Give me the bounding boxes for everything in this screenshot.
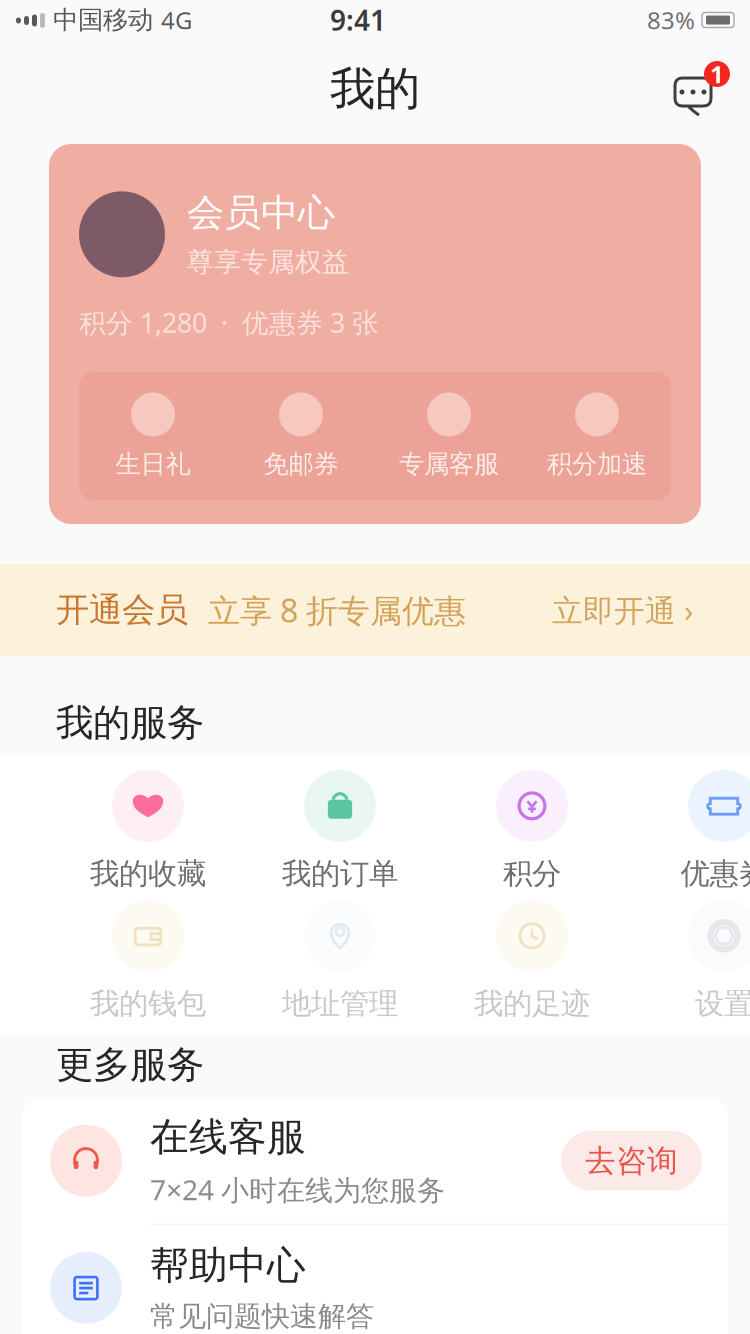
staticText: 我的服务	[56, 700, 204, 746]
staticText: 9:41	[330, 1, 386, 39]
button[interactable]: 开通会员	[0, 564, 750, 656]
staticText: 专属客服	[399, 448, 499, 479]
button[interactable]: 设置	[628, 896, 750, 1026]
staticText: 立享 8 折专属优惠	[188, 589, 466, 631]
staticText: 立即开通 ›	[552, 590, 694, 630]
button[interactable]: 我的钱包	[52, 896, 244, 1026]
staticText: 帮助中心	[150, 1242, 306, 1289]
staticText: 生日礼	[115, 448, 190, 479]
staticText: 积分	[503, 856, 561, 892]
staticText: 优惠券	[680, 856, 750, 892]
staticText: 设置	[695, 986, 750, 1022]
staticText: 积分加速	[547, 448, 647, 479]
staticText: 我的足迹	[474, 986, 590, 1022]
staticText: 在线客服	[150, 1113, 306, 1161]
button[interactable]: 在线客服	[22, 1098, 728, 1224]
staticText: 我的收藏	[90, 856, 206, 892]
staticText: 常见问题快速解答	[150, 1299, 374, 1334]
button[interactable]: 优惠券	[628, 766, 750, 896]
staticText: 我的钱包	[90, 986, 206, 1022]
staticText: 积分 1,280 · 优惠券 3 张	[79, 305, 379, 340]
staticText: 4G	[161, 4, 192, 36]
button[interactable]: 地址管理	[244, 896, 436, 1026]
button[interactable]: 我的订单	[244, 766, 436, 896]
button[interactable]: 积分	[436, 766, 628, 896]
staticText: 会员中心	[187, 190, 335, 236]
button[interactable]: 消息	[674, 61, 730, 117]
staticText: 尊享专属权益	[187, 246, 349, 279]
button[interactable]: 我的足迹	[436, 896, 628, 1026]
staticText: 83%	[647, 4, 695, 36]
staticText: 更多服务	[56, 1042, 204, 1088]
button[interactable]: 我的收藏	[52, 766, 244, 896]
staticText: 开通会员	[56, 589, 188, 630]
button[interactable]: 帮助中心	[22, 1225, 728, 1334]
staticText: 地址管理	[282, 986, 398, 1022]
staticText: 1	[710, 58, 724, 90]
staticText: 我的	[330, 61, 420, 117]
staticText: 去咨询	[585, 1142, 678, 1180]
staticText: 免邮券	[263, 448, 338, 479]
staticText: 7×24 小时在线为您服务	[150, 1171, 445, 1208]
staticText: 中国移动	[53, 4, 153, 35]
staticText: 我的订单	[282, 856, 398, 892]
